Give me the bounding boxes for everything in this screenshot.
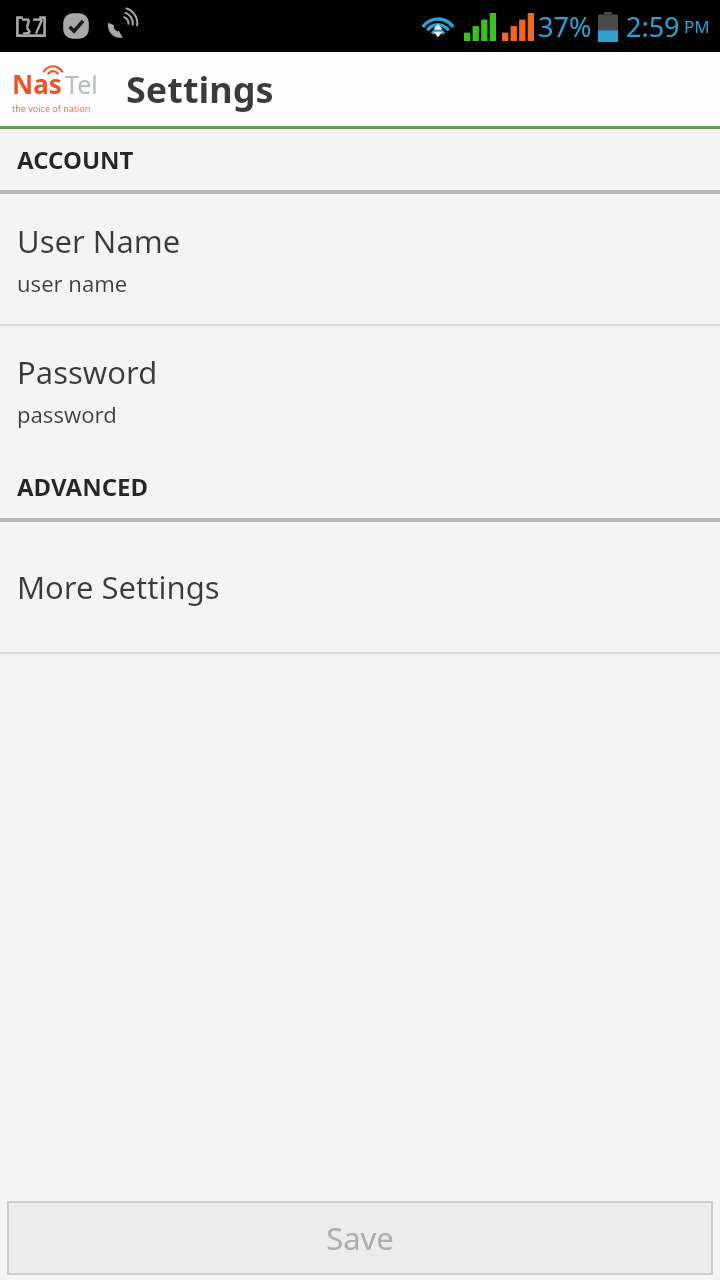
staticText: More Settings xyxy=(17,566,220,608)
staticText: User Name xyxy=(17,220,181,262)
staticText: the voice of nation xyxy=(12,102,91,114)
staticText: Tel xyxy=(65,67,98,101)
staticText: PM xyxy=(684,15,710,38)
staticText: ACCOUNT xyxy=(17,143,134,176)
staticText: Nas xyxy=(12,66,62,101)
staticText: 37% xyxy=(538,8,592,45)
button[interactable]: User Name xyxy=(0,194,720,324)
staticText: Save xyxy=(326,1217,394,1259)
staticText: password xyxy=(17,399,117,429)
staticText: Settings xyxy=(126,65,274,114)
button[interactable]: Password xyxy=(0,326,720,454)
staticText: 2:59 xyxy=(626,8,680,45)
staticText: ADVANCED xyxy=(17,470,149,503)
staticText: Password xyxy=(17,351,158,393)
button[interactable]: More Settings xyxy=(0,522,720,652)
button[interactable]: Save xyxy=(8,1202,712,1274)
staticText: user name xyxy=(17,268,128,298)
